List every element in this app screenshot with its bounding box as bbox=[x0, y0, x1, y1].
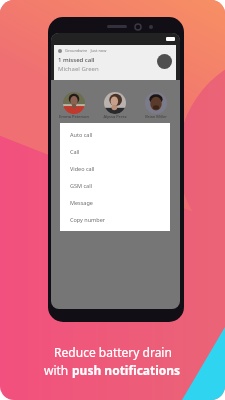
staticText: Reduce battery drain bbox=[54, 344, 172, 360]
staticText: Video call bbox=[70, 165, 95, 172]
staticText: GSM call bbox=[70, 182, 93, 189]
button[interactable]: Message bbox=[60, 194, 170, 211]
staticText: with bbox=[44, 362, 72, 378]
staticText: Alyssa Perez bbox=[97, 114, 133, 119]
staticText: 1 missed call bbox=[58, 56, 95, 64]
button[interactable]: Alyssa Perez bbox=[104, 92, 126, 114]
button[interactable]: Groundwire Just now bbox=[54, 45, 176, 80]
button[interactable]: Emma Peterson bbox=[63, 92, 85, 114]
staticText: Message bbox=[70, 199, 93, 206]
button[interactable]: Call bbox=[60, 143, 170, 160]
staticText: Emma Peterson bbox=[56, 114, 92, 119]
button[interactable]: GSM call bbox=[60, 177, 170, 194]
staticText: push notifications bbox=[72, 362, 181, 378]
button[interactable]: Brian Miller bbox=[145, 92, 167, 114]
button[interactable]: Auto call bbox=[60, 126, 170, 143]
button[interactable]: Copy number bbox=[60, 211, 170, 228]
staticText: Michael Green bbox=[58, 65, 99, 73]
staticText: Groundwire Just now bbox=[65, 48, 107, 53]
staticText: Auto call bbox=[70, 131, 93, 138]
staticText: Copy number bbox=[70, 216, 106, 223]
staticText: Brian Miller bbox=[138, 114, 174, 119]
button[interactable]: Video call bbox=[60, 160, 170, 177]
other: App icon bbox=[157, 54, 172, 69]
staticText: Call bbox=[70, 148, 80, 155]
